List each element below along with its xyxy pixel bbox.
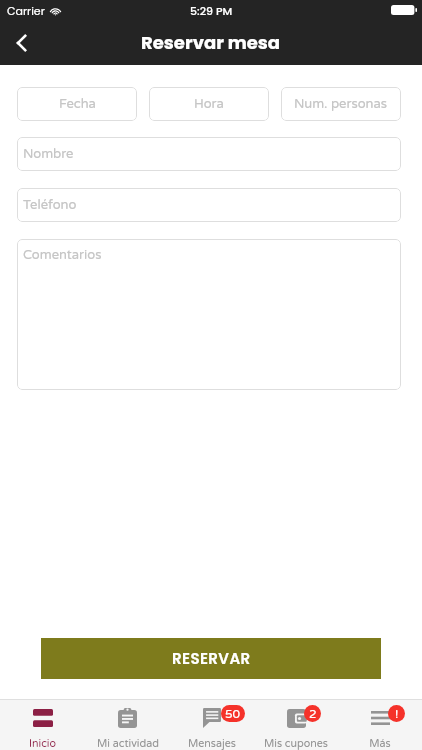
button[interactable]: !: [338, 700, 422, 750]
button[interactable]: 50: [170, 700, 254, 750]
staticText: Mis cupones: [264, 737, 328, 750]
staticText: Mi actividad: [97, 737, 159, 750]
staticText: 50: [225, 707, 241, 721]
staticText: Fecha: [59, 96, 96, 112]
staticText: Inicio: [29, 737, 56, 750]
staticText: 2: [309, 707, 317, 721]
staticText: Teléfono: [23, 197, 77, 213]
staticText: Reservar mesa: [141, 30, 281, 55]
button[interactable]: RESERVAR: [41, 638, 381, 679]
button[interactable]: Num. personas: [281, 87, 401, 121]
staticText: Comentarios: [23, 247, 102, 263]
staticText: Carrier: [7, 3, 45, 18]
staticText: Hora: [194, 96, 224, 112]
button[interactable]: Back: [0, 21, 44, 65]
staticText: 5:29 PM: [190, 3, 233, 18]
button[interactable]: Inicio: [0, 700, 85, 750]
button[interactable]: Fecha: [17, 87, 137, 121]
button[interactable]: 2: [254, 700, 338, 750]
staticText: Mensajes: [188, 737, 236, 750]
button[interactable]: Nombre: [17, 137, 401, 171]
button[interactable]: Teléfono: [17, 188, 401, 222]
button[interactable]: Comentarios: [17, 239, 401, 390]
button[interactable]: Hora: [149, 87, 269, 121]
button[interactable]: Mi actividad: [85, 700, 170, 750]
staticText: Num. personas: [294, 96, 388, 112]
staticText: !: [395, 707, 399, 721]
staticText: RESERVAR: [172, 648, 251, 669]
staticText: Nombre: [23, 146, 74, 162]
staticText: Más: [369, 737, 391, 750]
